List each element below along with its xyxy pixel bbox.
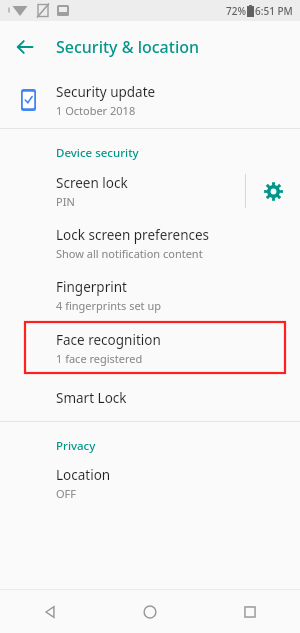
staticText: 72% — [226, 4, 246, 18]
button[interactable]: Home — [100, 590, 200, 633]
staticText: Privacy — [56, 438, 96, 454]
button[interactable]: Face recognition — [0, 321, 300, 375]
button[interactable]: Fingerprint — [0, 269, 300, 321]
button[interactable]: Lock screen preferences — [0, 217, 300, 269]
button[interactable]: Screen lock settings — [246, 165, 300, 217]
staticText: OFF — [56, 486, 77, 501]
staticText: Security & location — [56, 36, 200, 58]
staticText: 1 face registered — [56, 351, 143, 366]
button[interactable]: Back — [0, 590, 100, 633]
button[interactable]: Back — [10, 32, 40, 62]
button[interactable]: Smart Lock — [0, 375, 300, 421]
staticText: Security update — [56, 83, 156, 101]
staticText: Device security — [56, 145, 139, 161]
staticText: 6:51 PM — [255, 4, 293, 18]
staticText: Location — [56, 466, 111, 484]
button[interactable]: Security update — [0, 72, 300, 128]
staticText: Lock screen preferences — [56, 226, 210, 244]
staticText: 1 October 2018 — [56, 103, 136, 118]
staticText: PIN — [56, 194, 75, 209]
staticText: Face recognition — [56, 331, 161, 349]
staticText: 4 fingerprints set up — [56, 298, 161, 313]
button[interactable]: Recent apps — [200, 590, 300, 633]
staticText: Show all notification content — [56, 246, 203, 261]
staticText: Screen lock — [56, 174, 128, 192]
staticText: Smart Lock — [56, 389, 127, 407]
button[interactable]: Screen lock — [0, 165, 245, 217]
staticText: Fingerprint — [56, 278, 127, 296]
button[interactable]: Location — [0, 458, 300, 508]
